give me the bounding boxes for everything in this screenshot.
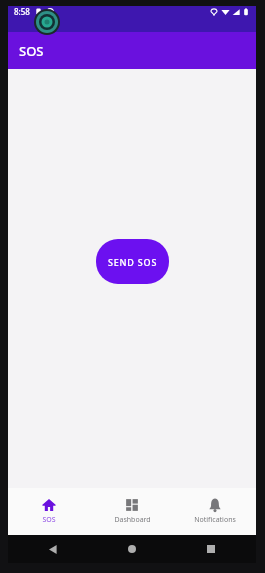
staticText: SOS [42, 515, 56, 525]
button[interactable]: Back [42, 538, 64, 560]
staticText: SEND SOS [108, 256, 158, 268]
staticText: SOS [19, 42, 44, 60]
button[interactable]: SOS [12, 498, 86, 525]
button[interactable]: SEND SOS [96, 239, 169, 284]
button[interactable]: Home [121, 538, 143, 560]
staticText: Dashboard [114, 515, 151, 525]
button[interactable]: Notifications [178, 498, 252, 525]
staticText: Notifications [194, 515, 236, 525]
button[interactable]: Recents [200, 538, 222, 560]
button[interactable]: Dashboard [95, 498, 169, 525]
staticText: 8:58 [14, 6, 30, 17]
